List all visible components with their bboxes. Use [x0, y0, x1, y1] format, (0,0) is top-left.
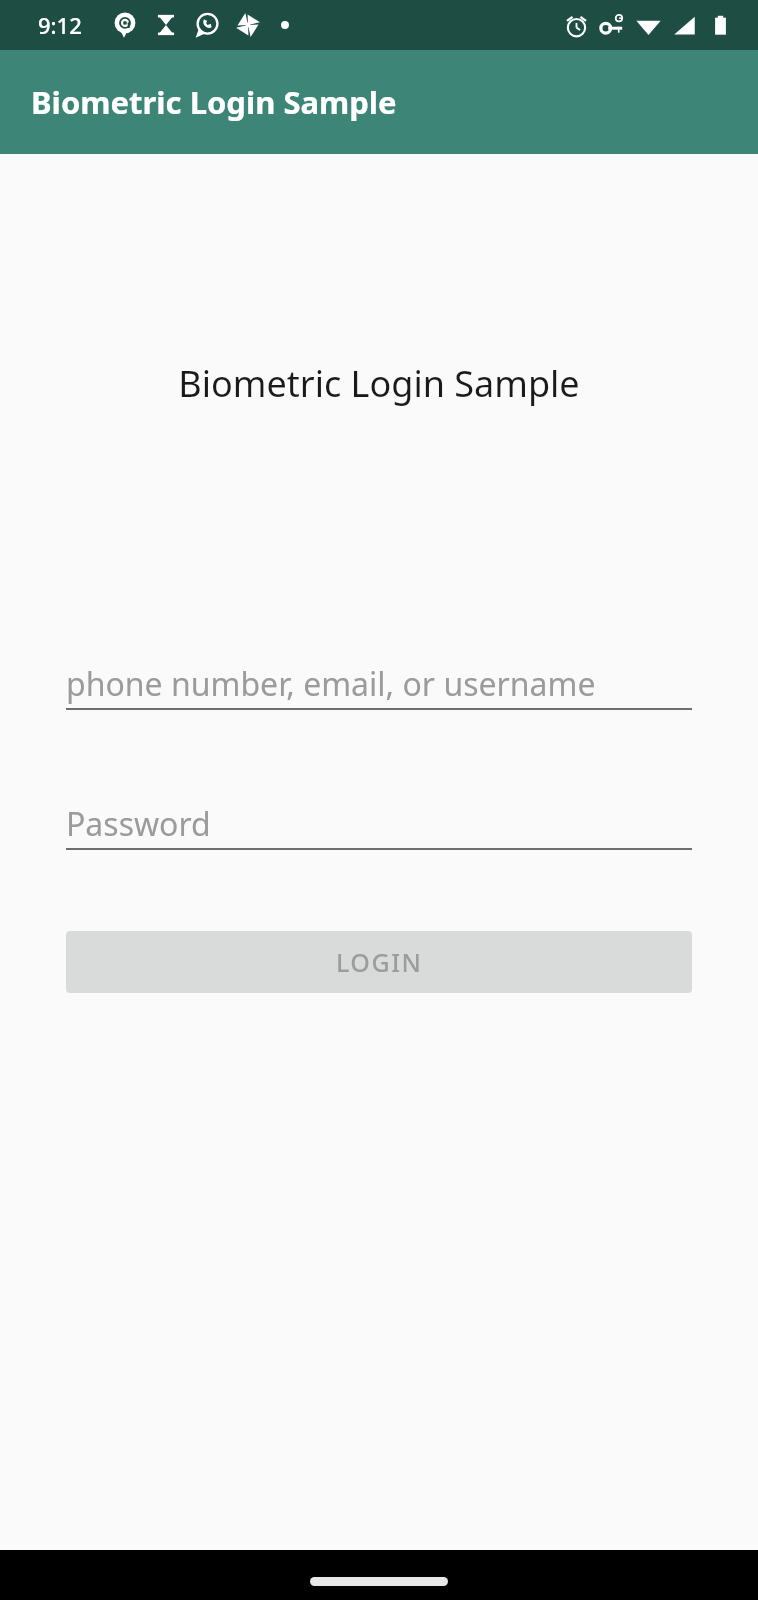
staticText: LOGIN: [336, 945, 423, 979]
button[interactable]: phone number, email, or username: [66, 660, 692, 710]
staticText: phone number, email, or username: [66, 662, 596, 706]
other: Home gesture handle: [310, 1577, 448, 1586]
staticText: Biometric Login Sample: [0, 359, 758, 408]
staticText: Password: [66, 802, 211, 846]
button[interactable]: LOGIN: [66, 931, 692, 993]
staticText: 9:12: [38, 10, 82, 40]
button[interactable]: Password: [66, 800, 692, 850]
staticText: Biometric Login Sample: [31, 81, 397, 123]
